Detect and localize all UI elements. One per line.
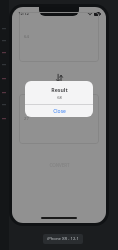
staticText: 12:12 (18, 11, 29, 17)
button[interactable]: 27 (19, 94, 99, 144)
button[interactable]: Close (25, 105, 93, 117)
staticText: Close (53, 108, 66, 115)
staticText: 27 (24, 116, 29, 122)
staticText: 68 (57, 95, 62, 100)
staticText: CONVERT (49, 162, 70, 168)
staticText: Result (51, 86, 68, 93)
staticText: 64 (24, 34, 29, 40)
button[interactable]: 64 (19, 12, 99, 62)
button[interactable]: Swap values (19, 70, 99, 86)
staticText: iPhone XR - 12.1 (47, 236, 79, 242)
